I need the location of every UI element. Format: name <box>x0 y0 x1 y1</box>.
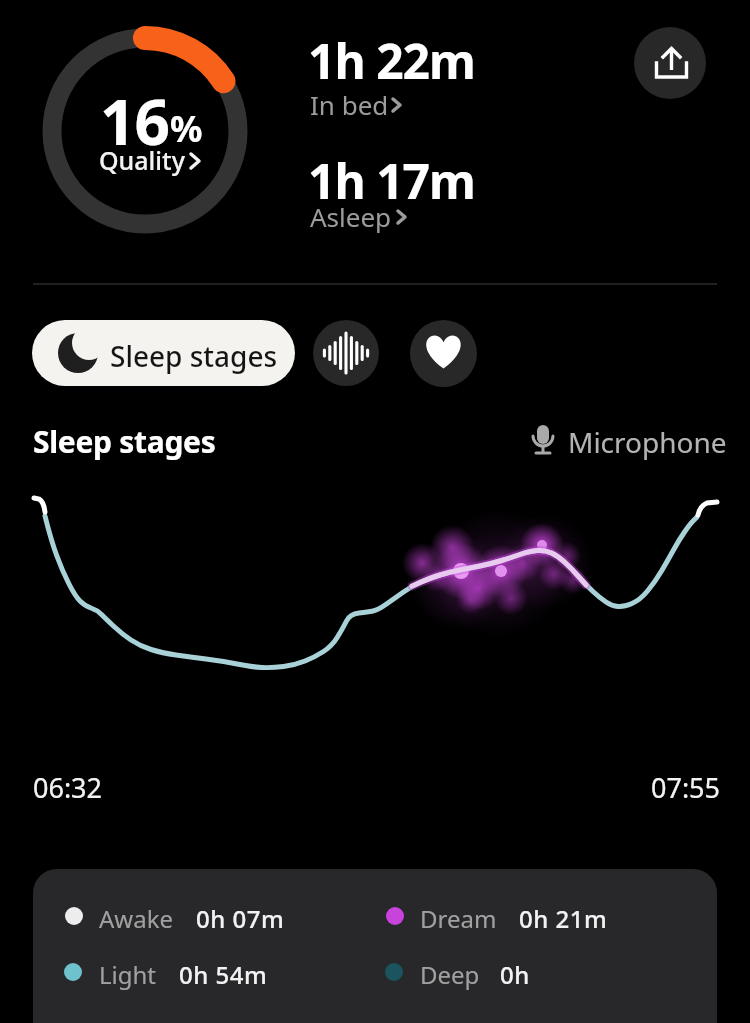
staticText: Dream <box>420 902 497 935</box>
button[interactable]: 1h 22m <box>308 28 475 93</box>
staticText: Microphone <box>568 423 727 461</box>
button[interactable]: Microphone <box>520 420 720 462</box>
staticText: 16 <box>100 79 169 163</box>
staticText: Light <box>99 958 157 991</box>
button[interactable] <box>634 27 706 99</box>
staticText: 0h <box>500 958 530 991</box>
staticText: 1h 17m <box>308 148 475 213</box>
staticText: Deep <box>420 958 480 991</box>
staticText: 06:32 <box>33 769 103 806</box>
button[interactable] <box>42 28 248 234</box>
button[interactable] <box>313 320 379 386</box>
staticText: Quality <box>99 143 185 177</box>
staticText: 0h 07m <box>196 902 285 935</box>
button[interactable] <box>410 320 477 387</box>
staticText: In bed <box>310 87 389 122</box>
staticText: 07:55 <box>651 769 721 806</box>
staticText: Awake <box>99 902 174 935</box>
staticText: Sleep stages <box>33 421 216 462</box>
staticText: 0h 54m <box>179 958 268 991</box>
button[interactable]: 1h 17m <box>308 148 475 213</box>
staticText: 1h 22m <box>308 28 475 93</box>
staticText: Asleep <box>310 199 392 234</box>
staticText: Sleep stages <box>110 337 278 375</box>
staticText: 0h 21m <box>519 902 608 935</box>
staticText: % <box>170 104 203 153</box>
button[interactable]: Sleep stages <box>32 320 295 386</box>
